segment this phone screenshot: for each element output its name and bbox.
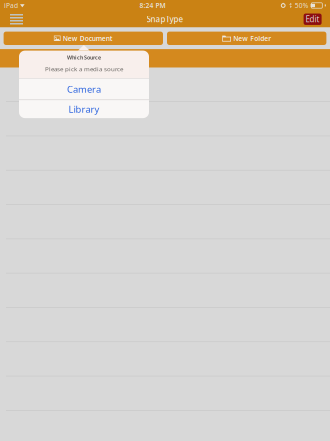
button[interactable]: Library [19,100,149,118]
staticText: iPad [4,1,18,10]
staticText: 8:24 PM [140,1,166,10]
staticText: 50% [295,1,309,10]
staticText: Please pick a media source [45,65,123,73]
staticText: Camera [67,83,101,95]
staticText: Which Source [67,54,101,61]
button[interactable]: New Folder [167,32,326,45]
staticText: Library [68,103,99,115]
button[interactable]: Camera [19,79,149,99]
staticText: SnapType [146,14,183,24]
staticText: Edit [306,14,320,24]
button[interactable]: New Document [4,32,163,45]
staticText: New Folder [233,34,271,43]
button[interactable]: Edit [304,14,322,25]
staticText: New Document [63,34,113,43]
button[interactable]: Menu [0,11,31,27]
